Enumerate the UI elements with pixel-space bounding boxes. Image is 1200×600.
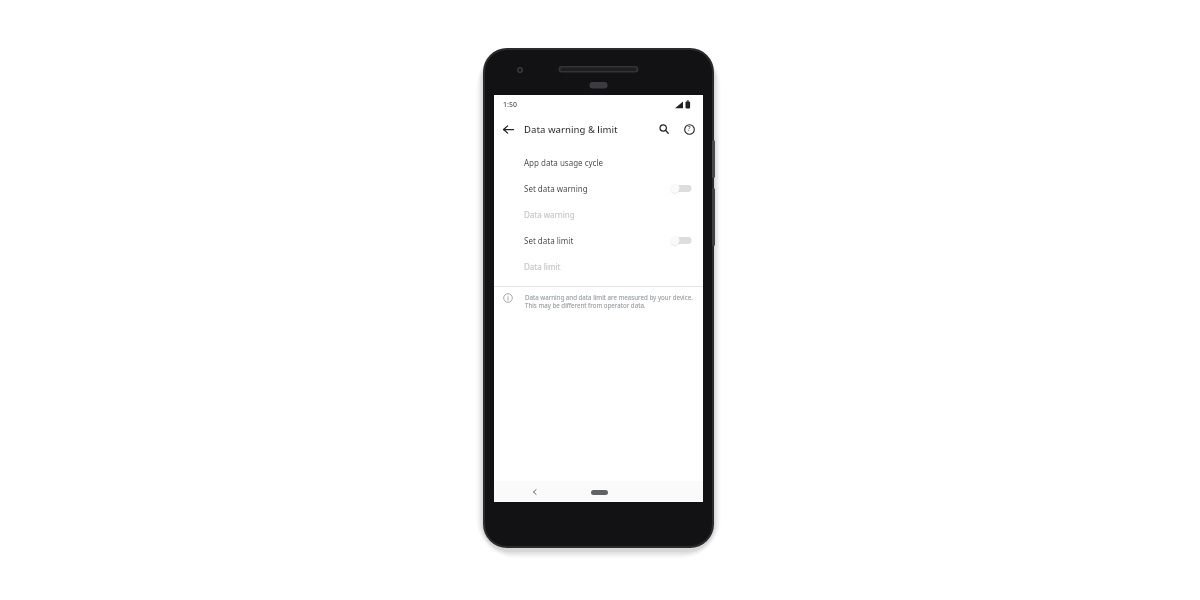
button[interactable]: Data limit <box>494 253 703 279</box>
button[interactable]: Search <box>654 119 674 139</box>
staticText: 1:50 <box>503 100 517 110</box>
button[interactable]: Set data limit <box>494 227 703 253</box>
button[interactable]: Help <box>679 119 699 139</box>
staticText: Data warning & limit <box>524 123 618 136</box>
button[interactable]: Set data warning <box>494 175 703 201</box>
button[interactable]: Data warning <box>494 201 703 227</box>
staticText: Set data warning <box>524 183 588 194</box>
staticText: App data usage cycle <box>524 157 604 168</box>
staticText: Set data limit <box>524 235 574 246</box>
button[interactable]: Back <box>498 119 518 139</box>
staticText: ? <box>687 124 691 134</box>
button[interactable]: App data usage cycle <box>494 149 703 175</box>
staticText: Data warning <box>524 209 575 220</box>
button[interactable]: Back <box>528 485 542 499</box>
staticText: Data warning and data limit are measured… <box>525 293 693 309</box>
button[interactable]: Home <box>586 485 612 499</box>
staticText: Data limit <box>524 261 561 272</box>
